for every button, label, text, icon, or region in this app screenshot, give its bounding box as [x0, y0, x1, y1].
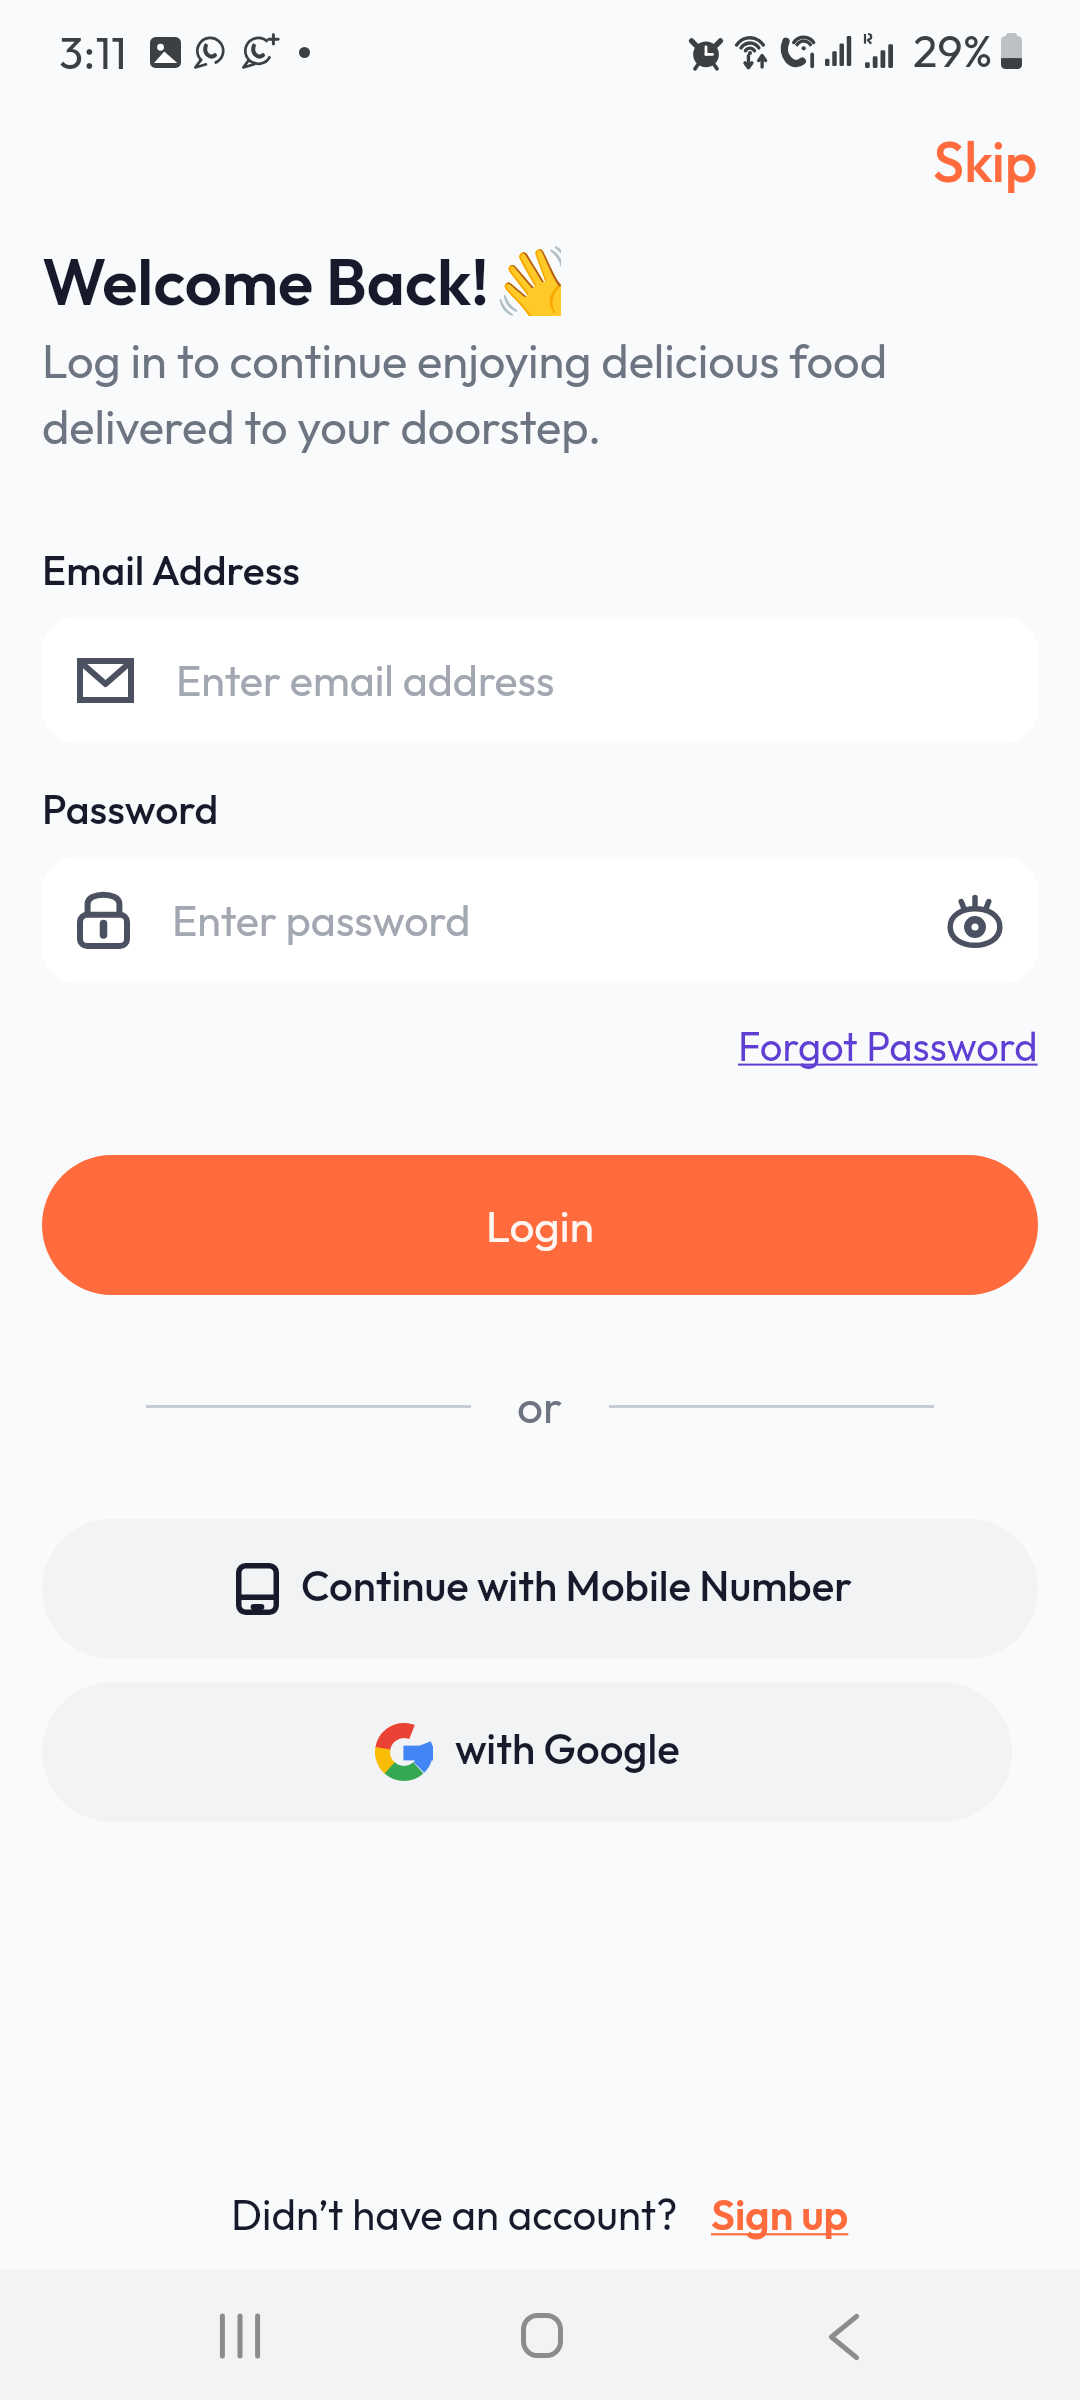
- staticText: Log in to continue enjoying delicious fo…: [42, 331, 888, 457]
- staticText: 29%: [913, 22, 993, 79]
- button[interactable]: Login: [42, 1155, 1038, 1295]
- button[interactable]: Sign up: [711, 2188, 849, 2241]
- staticText: with Google: [455, 1722, 680, 1775]
- button[interactable]: Back: [784, 2277, 904, 2397]
- button[interactable]: Recent apps: [180, 2276, 300, 2396]
- staticText: Enter email address: [176, 653, 555, 707]
- other: Email: [77, 658, 134, 703]
- staticText: 3:11: [59, 24, 127, 81]
- button[interactable]: Skip: [933, 88, 1080, 197]
- staticText: Didn’t have an account?: [231, 2188, 678, 2241]
- staticText: Forgot Password: [738, 1021, 1038, 1071]
- button[interactable]: Show password: [932, 877, 1018, 963]
- button[interactable]: Password: [42, 857, 1038, 983]
- staticText: Login: [486, 1198, 594, 1253]
- button[interactable]: Continue with Mobile Number: [42, 1519, 1038, 1659]
- staticText: Continue with Mobile Number: [301, 1559, 852, 1612]
- staticText: Enter password: [172, 893, 471, 947]
- staticText: Sign up: [711, 2188, 849, 2241]
- staticText: or: [517, 1377, 563, 1435]
- button[interactable]: Home: [482, 2275, 602, 2395]
- staticText: 👋: [491, 242, 561, 316]
- staticText: Email Address: [42, 544, 300, 596]
- button[interactable]: Forgot Password: [738, 1021, 1038, 1071]
- button[interactable]: with Google: [42, 1682, 1012, 1822]
- other: Password: [77, 891, 130, 949]
- staticText: Welcome Back!: [42, 240, 490, 322]
- button[interactable]: Email: [42, 617, 1038, 743]
- staticText: Password: [42, 783, 219, 835]
- staticText: Skip: [933, 126, 1038, 197]
